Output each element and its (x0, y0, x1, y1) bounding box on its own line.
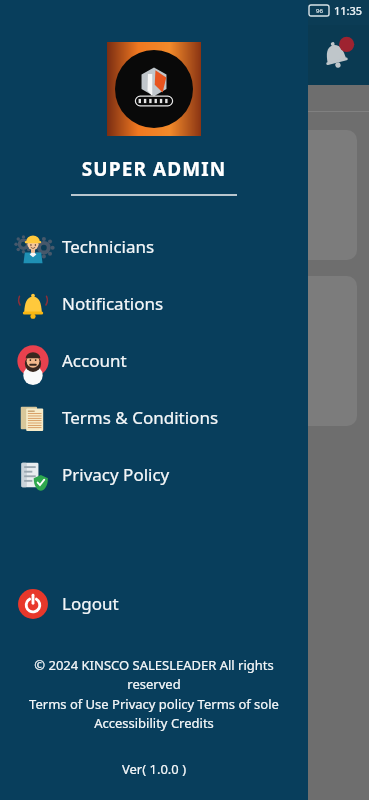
button[interactable]: Logout (0, 575, 308, 632)
button[interactable]: Terms & Conditions (0, 389, 308, 446)
staticText: Logout (62, 592, 119, 615)
staticText: Account (62, 349, 127, 372)
staticText: Terms & Conditions (62, 406, 219, 429)
staticText: 96 (316, 7, 323, 15)
button[interactable]: Terms of Use Privacy policy Terms of sol… (18, 695, 290, 732)
staticText: Ver( 1.0.0 ) (0, 760, 308, 778)
button[interactable]: ED (18, 130, 357, 260)
staticText: Technicians (62, 235, 155, 258)
button[interactable]: Account (0, 332, 308, 389)
staticText: Privacy Policy (62, 463, 170, 486)
staticText: LLED (20, 290, 52, 308)
staticText: Notifications (62, 292, 164, 315)
button[interactable]: LLED (18, 276, 357, 426)
staticText: © 2024 KINSCO SALESLEADER All rights res… (26, 656, 282, 693)
staticText: 11:35 (334, 3, 363, 18)
button[interactable]: Notifications (0, 275, 308, 332)
staticText: SUPER ADMIN (0, 156, 308, 182)
button[interactable]: Technicians (0, 218, 308, 275)
button[interactable]: Privacy Policy (0, 446, 308, 503)
button[interactable]: Notifications (317, 36, 355, 74)
